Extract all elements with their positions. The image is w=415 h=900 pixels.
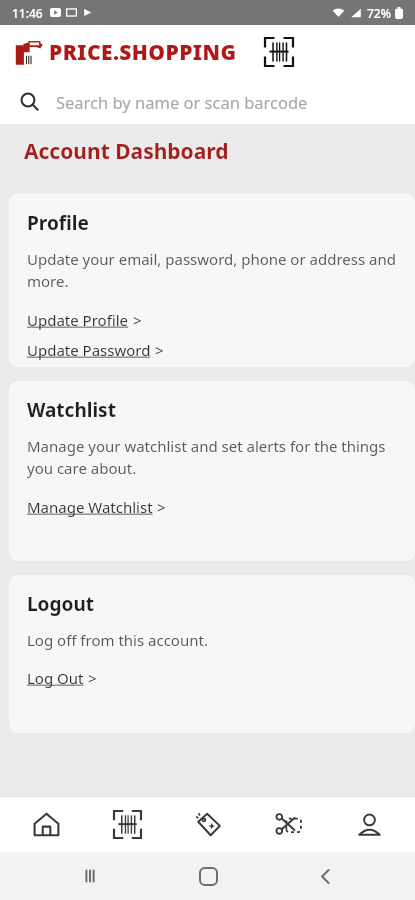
button[interactable]: Home [11, 797, 81, 852]
button[interactable]: Profile [9, 194, 415, 367]
staticText: Update Password [27, 340, 151, 360]
staticText: 72% [367, 5, 391, 21]
staticText: Search by name or scan barcode [56, 91, 308, 113]
button[interactable]: Logout [9, 575, 415, 733]
staticText: Logout [27, 591, 94, 617]
button[interactable]: Recents [62, 852, 118, 900]
staticText: Update your email, password, phone or ad… [27, 249, 403, 292]
button[interactable]: Coupons [253, 797, 323, 852]
button[interactable]: Deals [173, 797, 243, 852]
staticText: Watchlist [27, 397, 116, 423]
button[interactable]: Watchlist [9, 381, 415, 561]
button[interactable]: Search by name or scan barcode [0, 79, 415, 124]
staticText: Manage your watchlist and set alerts for… [27, 436, 403, 479]
staticText: > [129, 310, 142, 330]
button[interactable]: Manage Watchlist [27, 492, 166, 522]
staticText: Account Dashboard [24, 137, 229, 166]
button[interactable]: Home [180, 852, 236, 900]
staticText: Log off from this account. [27, 630, 208, 650]
button[interactable]: Update Password [27, 335, 164, 365]
staticText: Log Out [27, 668, 84, 688]
staticText: > [151, 340, 164, 360]
button[interactable]: Log Out [27, 663, 97, 693]
staticText: > [153, 497, 166, 517]
staticText: PRICE.SHOPPING [49, 38, 237, 67]
staticText: Manage Watchlist [27, 497, 153, 517]
staticText: > [84, 668, 97, 688]
button[interactable]: Back [297, 852, 353, 900]
button[interactable]: Account [334, 797, 404, 852]
staticText: 11:46 [12, 5, 43, 21]
button[interactable]: Scan barcode [92, 797, 162, 852]
button[interactable]: Update Profile [27, 305, 142, 335]
staticText: Update Profile [27, 310, 129, 330]
staticText: Profile [27, 210, 89, 236]
button[interactable]: Scan barcode [262, 35, 296, 69]
